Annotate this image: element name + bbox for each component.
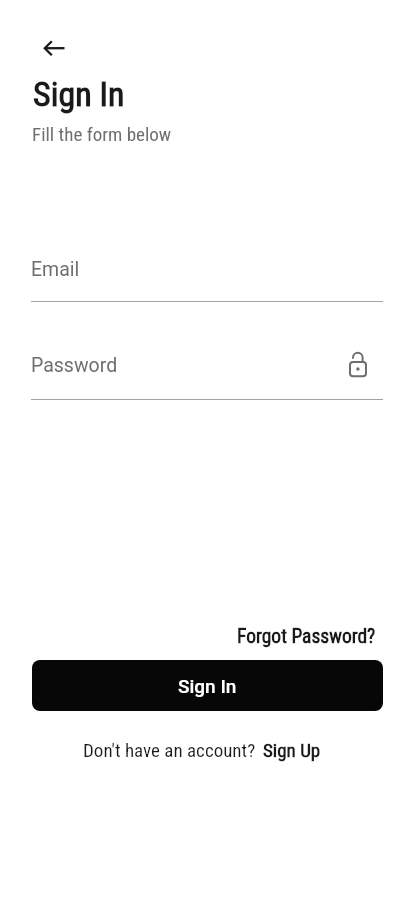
staticText: Password	[31, 354, 118, 377]
button[interactable]: Sign In	[32, 660, 383, 711]
button[interactable]: Email	[31, 252, 383, 302]
staticText: Fill the form below	[32, 123, 172, 145]
button[interactable]: Password	[31, 350, 383, 400]
staticText: Sign In	[33, 74, 125, 114]
staticText: Forgot Password?	[237, 625, 376, 648]
button[interactable]: Forgot Password?	[237, 625, 376, 648]
staticText: Email	[31, 258, 80, 281]
staticText: Don't have an account?	[83, 739, 256, 761]
staticText: Sign Up	[263, 739, 321, 761]
button[interactable]: Sign Up	[263, 739, 321, 761]
button[interactable]	[30, 24, 78, 72]
staticText: Sign In	[178, 675, 237, 697]
